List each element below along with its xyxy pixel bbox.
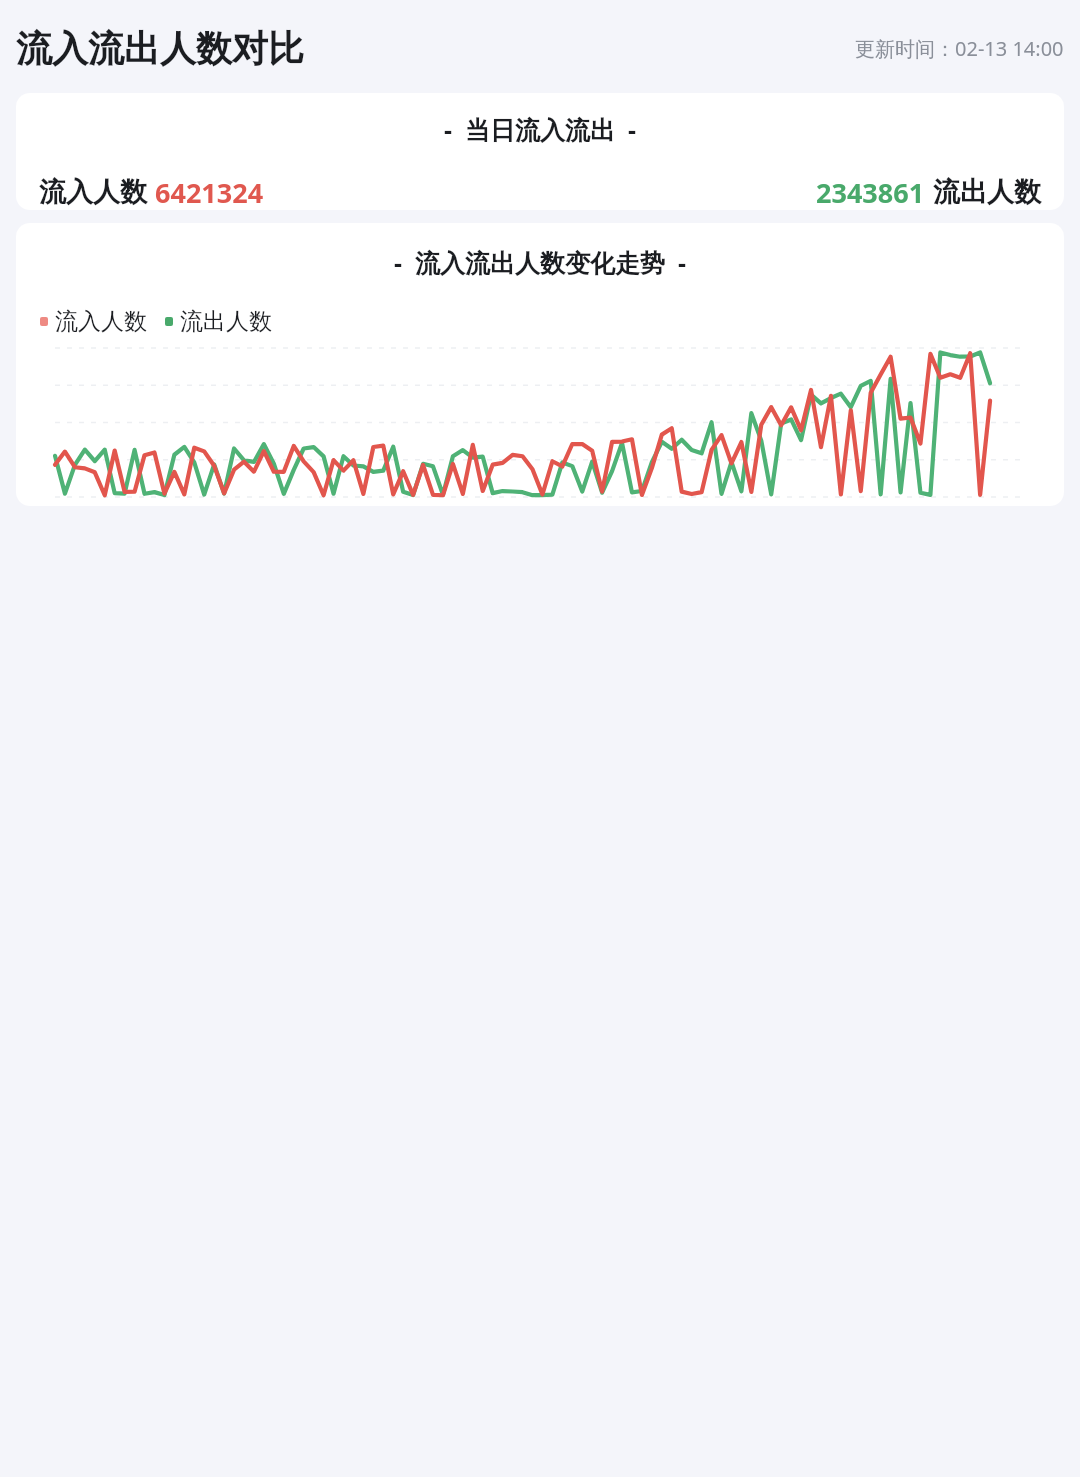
staticText: - 流入流出人数变化走势 - <box>394 245 687 279</box>
staticText: 流出人数 <box>180 307 272 336</box>
button[interactable]: - 当日流入流出 - <box>16 93 1064 210</box>
staticText: 流入人数 <box>39 175 147 209</box>
staticText: 2343861 <box>816 174 925 210</box>
staticText: - 当日流入流出 - <box>444 112 637 146</box>
staticText: 6421324 <box>155 174 264 210</box>
staticText: 流出人数 <box>933 175 1041 209</box>
staticText: 流入人数 <box>55 307 147 336</box>
staticText: 流入流出人数对比 <box>16 26 304 71</box>
button[interactable]: - 流入流出人数变化走势 - <box>16 223 1064 506</box>
staticText: 更新时间：02-13 14:00 <box>855 35 1064 62</box>
